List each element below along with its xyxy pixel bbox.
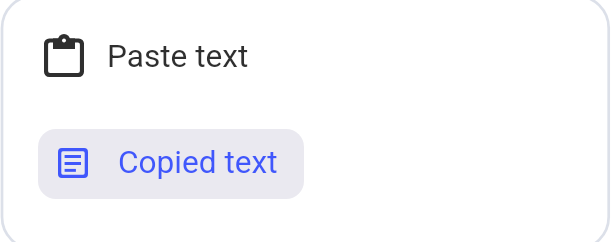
other: Paste text	[44, 34, 84, 77]
button[interactable]: Copied text	[38, 129, 304, 199]
staticText: Copied text	[118, 144, 278, 181]
other: Copied text	[58, 148, 88, 178]
button[interactable]: Paste text	[20, 20, 304, 90]
staticText: Paste text	[107, 38, 249, 75]
